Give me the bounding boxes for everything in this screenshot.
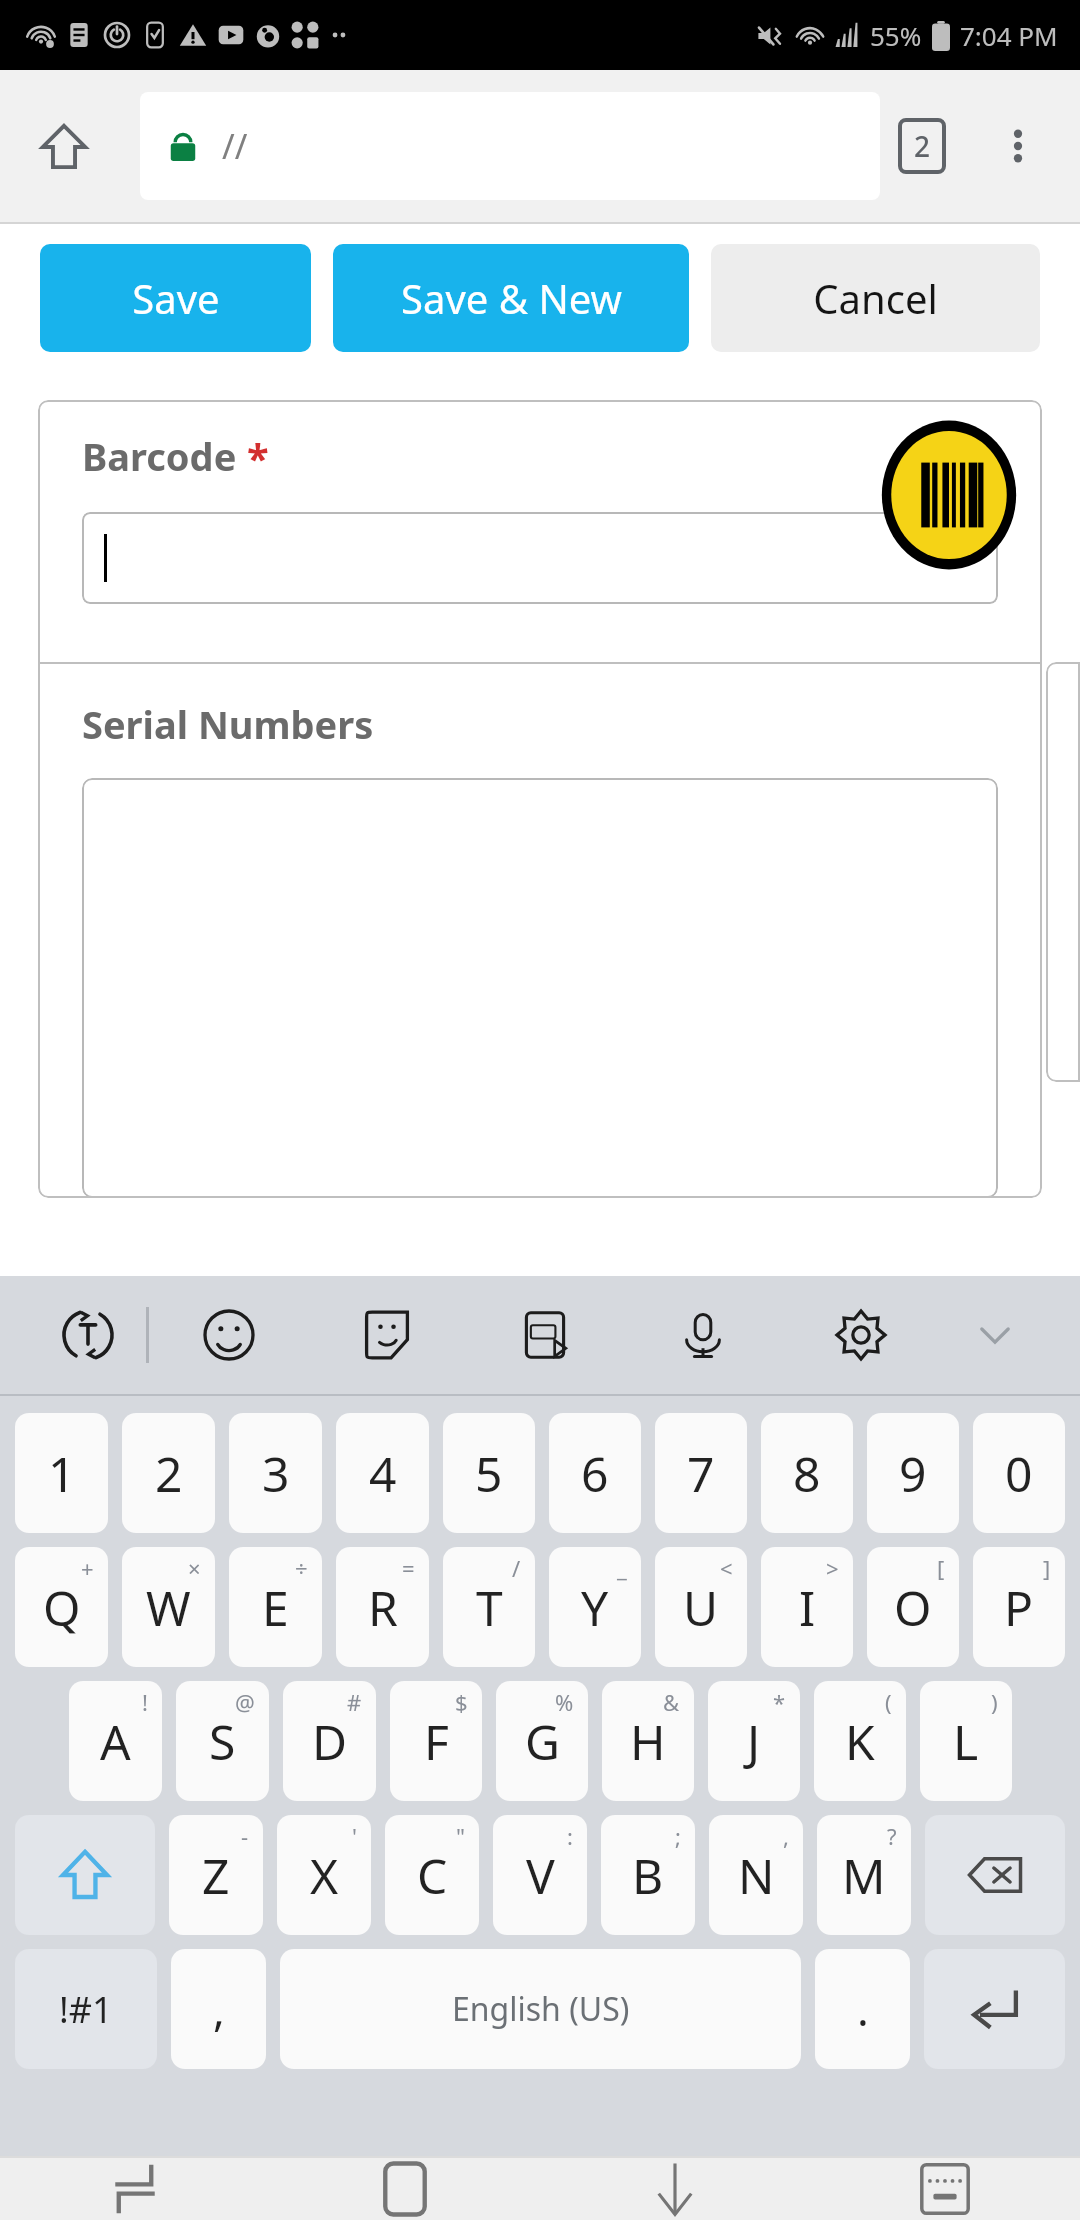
staticText: @ — [235, 1687, 255, 1717]
button[interactable]: // — [140, 92, 880, 200]
staticText: D — [312, 1709, 348, 1774]
button[interactable]: " — [385, 1815, 479, 1935]
button[interactable]: Emoji — [149, 1276, 308, 1394]
button[interactable]: ' — [277, 1815, 371, 1935]
button[interactable]: & — [602, 1681, 694, 1801]
button[interactable]: Switch keyboard — [810, 2158, 1080, 2220]
button[interactable]: English (US) — [280, 1949, 801, 2069]
button[interactable]: - — [169, 1815, 263, 1935]
button[interactable]: ; — [601, 1815, 695, 1935]
button[interactable]: ÷ — [229, 1547, 322, 1667]
staticText: L — [953, 1709, 979, 1774]
staticText: X — [310, 1843, 339, 1908]
staticText: 6 — [581, 1441, 609, 1506]
button[interactable]: Recent apps — [0, 2158, 270, 2220]
button[interactable]: 9 — [867, 1413, 959, 1533]
button[interactable]: _ — [549, 1547, 641, 1667]
button[interactable]: × — [122, 1547, 215, 1667]
staticText: - — [241, 1821, 249, 1851]
button[interactable]: * — [708, 1681, 800, 1801]
staticText: + — [81, 1553, 94, 1583]
button[interactable]: . — [815, 1949, 910, 2069]
button[interactable]: Collapse toolbar — [940, 1276, 1050, 1394]
staticText: 2 — [155, 1441, 183, 1506]
button[interactable]: Enter — [924, 1949, 1065, 2069]
button[interactable]: > — [761, 1547, 853, 1667]
staticText: R — [368, 1575, 398, 1640]
button[interactable]: GIF — [466, 1276, 624, 1394]
button[interactable]: + — [15, 1547, 108, 1667]
staticText: E — [262, 1575, 289, 1640]
staticText: " — [456, 1821, 465, 1851]
button[interactable]: 1 — [15, 1413, 108, 1533]
button[interactable]: Translate — [30, 1276, 146, 1394]
button[interactable]: 4 — [336, 1413, 429, 1533]
button[interactable]: Hide keyboard — [540, 2158, 810, 2220]
button[interactable]: Keyboard settings — [782, 1276, 940, 1394]
button[interactable]: 6 — [549, 1413, 641, 1533]
button[interactable]: Stickers — [308, 1276, 466, 1394]
staticText: ; — [675, 1821, 681, 1851]
staticText: P — [1004, 1575, 1034, 1640]
staticText: Z — [202, 1843, 230, 1908]
staticText: O — [894, 1575, 932, 1640]
staticText: H — [630, 1709, 666, 1774]
button[interactable]: 8 — [761, 1413, 853, 1533]
button[interactable]: # — [283, 1681, 376, 1801]
button[interactable]: Save — [40, 244, 311, 352]
button[interactable]: Home — [270, 2158, 540, 2220]
button[interactable]: , — [171, 1949, 266, 2069]
button[interactable]: @ — [176, 1681, 269, 1801]
button[interactable]: Voice input — [624, 1276, 782, 1394]
button[interactable]: ? — [817, 1815, 911, 1935]
button[interactable]: ! — [69, 1681, 162, 1801]
button[interactable]: 5 — [443, 1413, 535, 1533]
button[interactable]: Tabs, 2 open — [882, 106, 962, 186]
button[interactable]: ( — [814, 1681, 906, 1801]
button[interactable]: < — [655, 1547, 747, 1667]
staticText: Y — [581, 1575, 609, 1640]
staticText: W — [146, 1575, 191, 1640]
button[interactable]: Home — [24, 106, 104, 186]
button[interactable]: Backspace — [925, 1815, 1065, 1935]
button[interactable]: $ — [390, 1681, 482, 1801]
button[interactable]: ] — [973, 1547, 1065, 1667]
button[interactable]: Cancel — [711, 244, 1040, 352]
staticText: ) — [991, 1687, 998, 1717]
staticText: . — [857, 1979, 869, 2039]
button[interactable]: !#1 — [15, 1949, 157, 2069]
button[interactable]: [ — [867, 1547, 959, 1667]
button[interactable]: 0 — [973, 1413, 1065, 1533]
button[interactable]: Scan barcode — [876, 414, 1022, 576]
button[interactable]: % — [496, 1681, 588, 1801]
staticText: S — [209, 1709, 236, 1774]
button[interactable]: Shift — [15, 1815, 155, 1935]
staticText: Save — [132, 271, 220, 325]
staticText: 2 — [914, 127, 931, 165]
button[interactable]: ) — [920, 1681, 1012, 1801]
staticText: Cancel — [813, 271, 938, 325]
staticText: English (US) — [452, 1987, 630, 2031]
button[interactable]: = — [336, 1547, 429, 1667]
staticText: 4 — [369, 1441, 397, 1506]
button[interactable]: Save & New — [333, 244, 689, 352]
button[interactable] — [82, 512, 998, 604]
staticText: A — [100, 1709, 131, 1774]
staticText: > — [826, 1553, 839, 1583]
staticText: 55% — [870, 18, 922, 53]
button[interactable]: 7 — [655, 1413, 747, 1533]
button[interactable]: : — [493, 1815, 587, 1935]
button[interactable]: 3 — [229, 1413, 322, 1533]
staticText: ? — [887, 1821, 897, 1851]
staticText: Q — [43, 1575, 81, 1640]
button[interactable]: 2 — [122, 1413, 215, 1533]
button[interactable] — [82, 778, 998, 1198]
button[interactable]: , — [709, 1815, 803, 1935]
staticText: I — [799, 1575, 816, 1640]
button[interactable]: More options — [978, 106, 1058, 186]
staticText: Barcode — [82, 430, 237, 482]
staticText: M — [842, 1843, 886, 1908]
staticText: ÷ — [295, 1553, 308, 1583]
staticText: 9 — [899, 1441, 927, 1506]
button[interactable]: / — [443, 1547, 535, 1667]
